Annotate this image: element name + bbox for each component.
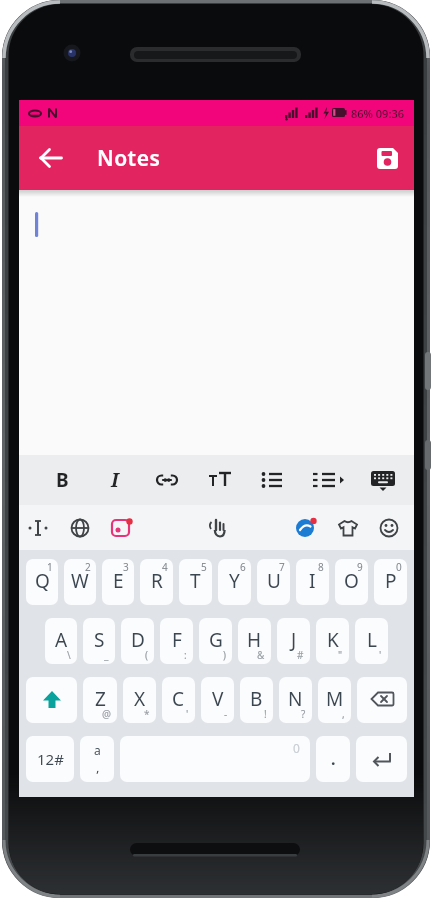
- staticText: B: [56, 467, 69, 493]
- button[interactable]: [357, 677, 407, 723]
- staticText: 7: [279, 560, 285, 574]
- staticText: L: [367, 627, 377, 653]
- staticText: K: [327, 627, 339, 653]
- staticText: P: [385, 568, 397, 594]
- staticText: U: [267, 568, 281, 594]
- button[interactable]: J: [277, 618, 310, 664]
- button[interactable]: Y: [218, 559, 251, 605]
- button[interactable]: B: [45, 455, 79, 505]
- button[interactable]: [199, 505, 233, 550]
- staticText: M: [326, 686, 344, 712]
- button[interactable]: P: [374, 559, 407, 605]
- button[interactable]: [356, 736, 407, 782]
- staticText: _: [104, 648, 109, 662]
- button[interactable]: L: [355, 618, 388, 664]
- button[interactable]: [19, 190, 414, 455]
- button[interactable]: [308, 455, 348, 505]
- staticText: D: [131, 627, 145, 653]
- staticText: 86% 09:36: [351, 106, 404, 121]
- staticText: S: [94, 627, 105, 653]
- button[interactable]: [372, 505, 406, 550]
- staticText: !: [264, 707, 267, 721]
- staticText: O: [344, 568, 359, 594]
- staticText: 2: [85, 560, 91, 574]
- button[interactable]: I: [98, 455, 132, 505]
- button[interactable]: [366, 455, 400, 505]
- staticText: \: [67, 648, 71, 662]
- button[interactable]: D: [121, 618, 154, 664]
- button[interactable]: M: [318, 677, 351, 723]
- staticText: 0: [293, 740, 300, 756]
- staticText: Notes: [97, 144, 161, 173]
- staticText: J: [291, 627, 297, 653]
- staticText: W: [71, 568, 89, 594]
- button[interactable]: N: [279, 677, 312, 723]
- staticText: 5: [201, 560, 207, 574]
- staticText: @: [102, 707, 111, 721]
- button[interactable]: [203, 455, 237, 505]
- button[interactable]: [105, 505, 139, 550]
- staticText: ): [223, 648, 226, 662]
- button[interactable]: [19, 126, 83, 190]
- staticText: a: [94, 742, 101, 758]
- staticText: Z: [95, 686, 106, 712]
- staticText: ?: [301, 707, 306, 721]
- button[interactable]: [360, 126, 414, 190]
- button[interactable]: [63, 505, 97, 550]
- button[interactable]: F: [160, 618, 193, 664]
- staticText: :: [184, 648, 187, 662]
- staticText: Q: [35, 568, 50, 594]
- button[interactable]: R: [140, 559, 173, 605]
- staticText: 3: [123, 560, 129, 574]
- staticText: 6: [240, 560, 246, 574]
- staticText: A: [55, 627, 68, 653]
- staticText: 8: [318, 560, 324, 574]
- button[interactable]: [331, 505, 365, 550]
- button[interactable]: V: [201, 677, 234, 723]
- staticText: 12#: [37, 749, 64, 769]
- button[interactable]: T: [179, 559, 212, 605]
- staticText: G: [209, 627, 223, 653]
- button[interactable]: Q: [26, 559, 58, 605]
- staticText: V: [212, 686, 224, 712]
- button[interactable]: E: [102, 559, 134, 605]
- button[interactable]: S: [83, 618, 115, 664]
- staticText: N: [288, 686, 303, 712]
- button[interactable]: K: [316, 618, 349, 664]
- staticText: -: [224, 707, 228, 721]
- button[interactable]: C: [162, 677, 195, 723]
- staticText: T: [190, 568, 201, 594]
- staticText: F: [172, 627, 182, 653]
- button[interactable]: [26, 677, 77, 723]
- button[interactable]: U: [257, 559, 290, 605]
- button[interactable]: [21, 505, 55, 550]
- button[interactable]: A: [45, 618, 77, 664]
- button[interactable]: B: [240, 677, 273, 723]
- staticText: Y: [229, 568, 240, 594]
- button[interactable]: Z: [83, 677, 117, 723]
- staticText: R: [151, 568, 163, 594]
- button[interactable]: W: [64, 559, 96, 605]
- staticText: E: [113, 568, 124, 594]
- button[interactable]: 12#: [26, 736, 74, 782]
- staticText: I: [309, 568, 316, 594]
- staticText: ": [338, 648, 343, 662]
- button[interactable]: O: [335, 559, 368, 605]
- button[interactable]: [290, 505, 324, 550]
- button[interactable]: I: [296, 559, 329, 605]
- staticText: (: [145, 648, 148, 662]
- staticText: I: [111, 467, 119, 493]
- staticText: 4: [162, 560, 168, 574]
- button[interactable]: G: [199, 618, 232, 664]
- button[interactable]: H: [238, 618, 271, 664]
- button[interactable]: [150, 455, 184, 505]
- staticText: X: [134, 686, 146, 712]
- button[interactable]: [255, 455, 289, 505]
- staticText: B: [250, 686, 263, 712]
- button[interactable]: .: [316, 736, 350, 782]
- staticText: .: [331, 748, 336, 770]
- staticText: #: [297, 648, 304, 662]
- button[interactable]: a: [80, 736, 114, 782]
- button[interactable]: X: [123, 677, 156, 723]
